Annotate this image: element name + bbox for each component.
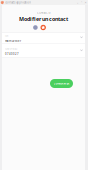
staticText: 0740027 [5, 52, 19, 56]
staticText: contacts application [5, 1, 31, 4]
button[interactable]: Numéro Principal [2, 44, 85, 58]
staticText: ⌄ ⌃ ✕ [76, 1, 86, 4]
staticText: Modifier un contact [19, 15, 68, 22]
button[interactable]: CONFIRMER [50, 79, 73, 88]
staticText: CONFIRMER [53, 82, 69, 85]
staticText: CONTACTS [37, 11, 50, 14]
staticText: Nom [5, 35, 8, 37]
staticText: Fatim Lettier [5, 39, 21, 43]
button[interactable]: Nom [2, 33, 85, 44]
staticText: Numéro Principal [5, 48, 17, 50]
